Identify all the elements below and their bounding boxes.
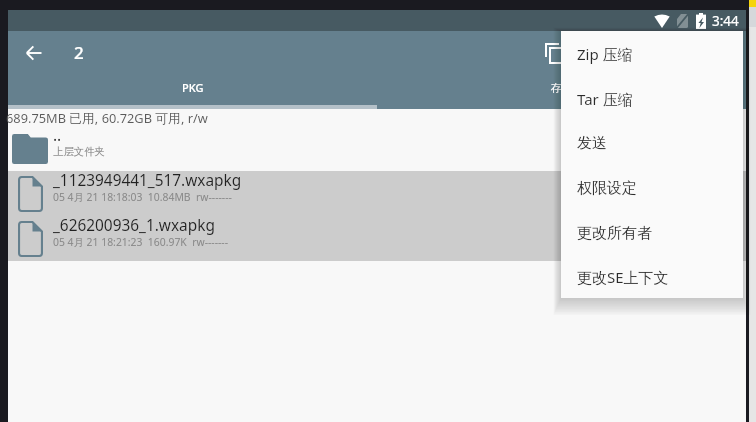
button[interactable]: Zip 压缩: [561, 31, 743, 76]
button[interactable]: _626200936_1.wxapkg: [8, 216, 746, 261]
staticText: 更改SE上下文: [577, 267, 669, 287]
staticText: Tar 压缩: [577, 89, 633, 109]
staticText: 上层文件夹: [53, 145, 105, 158]
staticText: PKG: [182, 80, 204, 95]
button[interactable]: 更改SE上下文: [561, 256, 743, 298]
button[interactable]: ..: [8, 126, 746, 171]
button[interactable]: 权限设定: [561, 166, 743, 211]
staticText: _1123949441_517.wxapkg: [53, 170, 242, 191]
button[interactable]: Back: [8, 31, 59, 75]
staticText: 更改所有者: [577, 224, 652, 243]
staticText: 689.75MB 已用, 60.72GB 可用, r/w: [6, 109, 208, 126]
button[interactable]: Tar 压缩: [561, 76, 743, 121]
staticText: 05 4月 21 18:21:23 160.97K rw-------: [53, 235, 229, 249]
button[interactable]: 发送: [561, 121, 743, 166]
staticText: 05 4月 21 18:18:03 10.84MB rw-------: [53, 190, 232, 204]
staticText: Zip 压缩: [577, 44, 633, 64]
staticText: ..: [53, 125, 62, 146]
staticText: 存储: [551, 81, 573, 95]
staticText: _626200936_1.wxapkg: [53, 215, 215, 236]
staticText: 权限设定: [577, 179, 637, 198]
button[interactable]: _1123949441_517.wxapkg: [8, 171, 746, 216]
staticText: 3:44: [712, 12, 739, 30]
staticText: 2: [74, 41, 84, 64]
button[interactable]: 更改所有者: [561, 211, 743, 256]
button[interactable]: PKG: [8, 73, 377, 109]
button[interactable]: Copy: [532, 31, 576, 75]
button[interactable]: 存储: [377, 73, 746, 109]
staticText: 发送: [577, 134, 607, 153]
